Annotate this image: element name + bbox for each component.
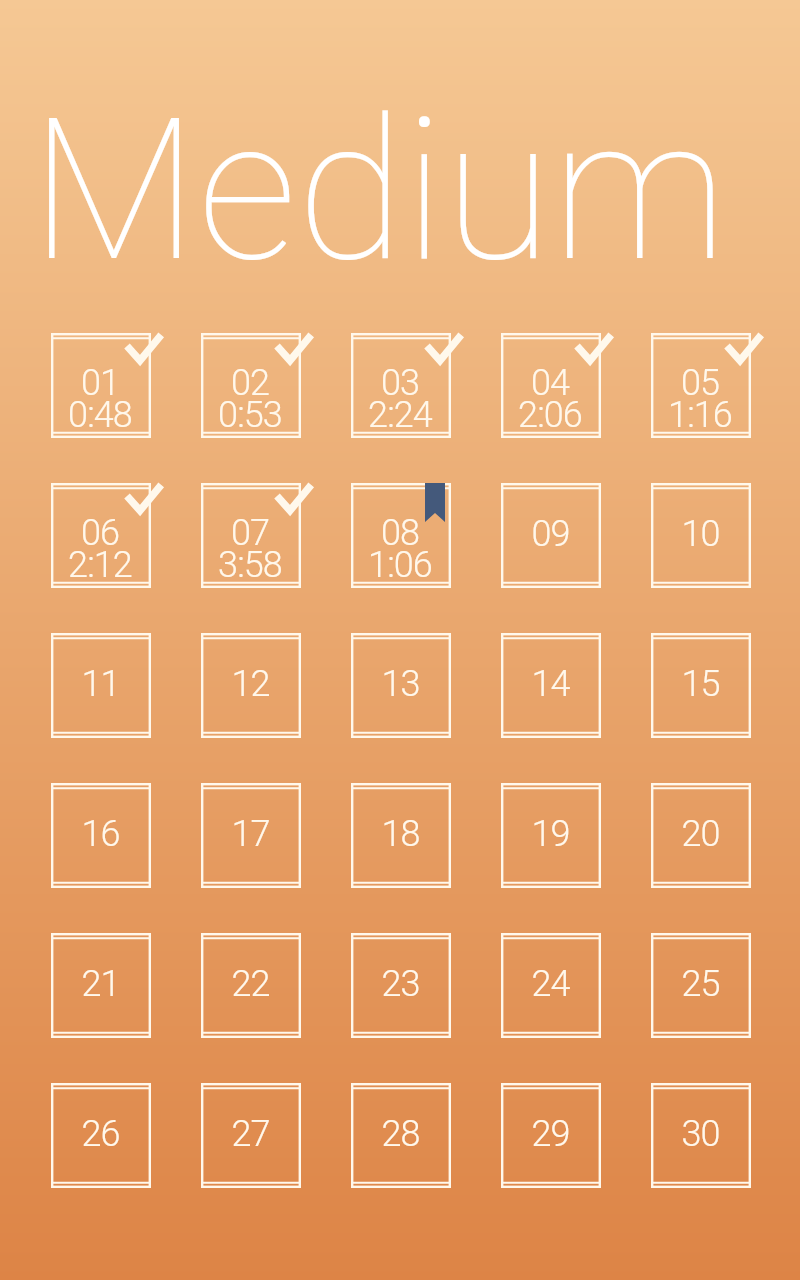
staticText: 26 [81,1113,120,1155]
staticText: 21 [81,963,120,1005]
staticText: 20 [681,813,720,855]
button[interactable]: Level 21 [51,933,151,1038]
other: Current level [425,483,445,522]
button[interactable]: Level 17 [201,783,301,888]
staticText: 06 2:12 [68,512,132,586]
button[interactable]: Level 10 [651,483,751,588]
other: Completed [124,483,164,519]
button[interactable]: Level 29 [501,1083,601,1188]
button[interactable]: Level 22 [201,933,301,1038]
staticText: 02 0:53 [218,362,282,436]
staticText: 16 [81,813,120,855]
button[interactable]: Level 2 [201,333,301,438]
staticText: 22 [231,963,270,1005]
button[interactable]: Level 25 [651,933,751,1038]
button[interactable]: Level 26 [51,1083,151,1188]
button[interactable]: Level 7 [201,483,301,588]
button[interactable]: Level 9 [501,483,601,588]
staticText: 15 [681,663,720,705]
staticText: 19 [531,813,570,855]
staticText: 30 [681,1113,720,1155]
button[interactable]: Level 8 [351,483,451,588]
staticText: 24 [531,963,570,1005]
staticText: 04 2:06 [518,362,582,436]
staticText: 05 1:16 [668,362,732,436]
button[interactable]: Level 3 [351,333,451,438]
staticText: Medium [30,76,728,306]
button[interactable]: Level 14 [501,633,601,738]
staticText: 13 [381,663,420,705]
button[interactable]: Level 16 [51,783,151,888]
other: Completed [424,333,464,369]
button[interactable]: Level 27 [201,1083,301,1188]
button[interactable]: Level 23 [351,933,451,1038]
staticText: 14 [531,663,570,705]
button[interactable]: Level 12 [201,633,301,738]
button[interactable]: Level 19 [501,783,601,888]
staticText: 17 [231,813,270,855]
button[interactable]: Level 6 [51,483,151,588]
other: Completed [274,333,314,369]
button[interactable]: Level 4 [501,333,601,438]
button[interactable]: Level 13 [351,633,451,738]
button[interactable]: Level 20 [651,783,751,888]
staticText: 01 0:48 [68,362,132,436]
staticText: 07 3:58 [218,512,282,586]
other: Completed [724,333,764,369]
staticText: 12 [231,663,270,705]
staticText: 27 [231,1113,270,1155]
staticText: 08 1:06 [368,512,432,586]
button[interactable]: Level 15 [651,633,751,738]
staticText: 25 [681,963,720,1005]
staticText: 23 [381,963,420,1005]
other: Completed [274,483,314,519]
other: Completed [574,333,614,369]
button[interactable]: Level 24 [501,933,601,1038]
staticText: 18 [381,813,420,855]
staticText: 28 [381,1113,420,1155]
other: Completed [124,333,164,369]
staticText: 10 [681,513,720,555]
button[interactable]: Level 30 [651,1083,751,1188]
button[interactable]: Level 1 [51,333,151,438]
button[interactable]: Level 18 [351,783,451,888]
staticText: 29 [531,1113,570,1155]
staticText: 09 [531,513,570,555]
staticText: 03 2:24 [368,362,432,436]
staticText: 11 [81,663,120,705]
button[interactable]: Level 11 [51,633,151,738]
button[interactable]: Level 28 [351,1083,451,1188]
button[interactable]: Level 5 [651,333,751,438]
